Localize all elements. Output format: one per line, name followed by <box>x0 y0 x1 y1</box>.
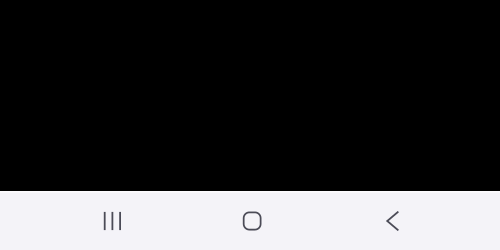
button[interactable]: Home <box>209 191 295 250</box>
button[interactable]: Back <box>350 191 436 250</box>
button[interactable]: Recents <box>69 191 155 250</box>
